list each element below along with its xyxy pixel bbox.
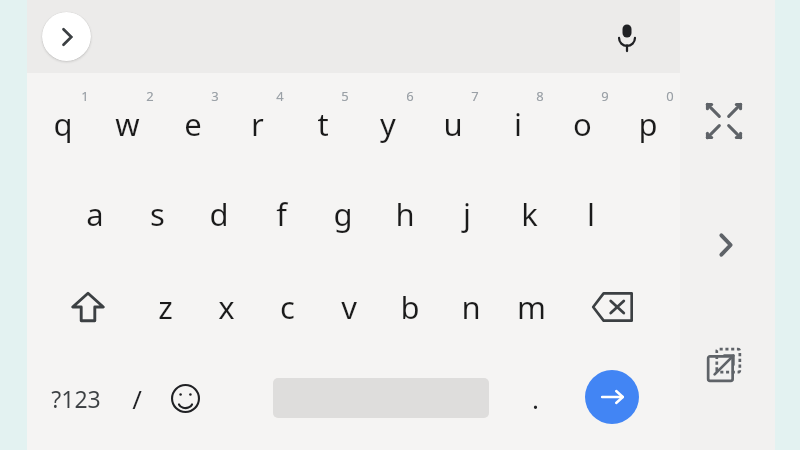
staticText: ?123 xyxy=(51,383,101,414)
button[interactable]: . xyxy=(509,360,561,436)
staticText: q xyxy=(53,103,73,145)
button[interactable]: Backspace xyxy=(579,266,645,348)
staticText: k xyxy=(521,193,538,235)
button[interactable]: l xyxy=(560,171,622,257)
staticText: 7 xyxy=(471,87,479,105)
staticText: r xyxy=(251,103,264,145)
staticText: h xyxy=(395,193,415,235)
button[interactable]: e xyxy=(160,81,225,167)
button[interactable]: q xyxy=(30,81,95,167)
button[interactable]: j xyxy=(436,171,498,257)
staticText: o xyxy=(573,103,592,145)
button[interactable]: p xyxy=(615,81,680,167)
button[interactable]: m xyxy=(501,264,562,350)
staticText: c xyxy=(280,286,295,328)
staticText: / xyxy=(132,381,142,416)
staticText: l xyxy=(587,193,595,235)
button[interactable]: s xyxy=(126,171,188,257)
button[interactable]: Enter xyxy=(585,370,639,424)
staticText: t xyxy=(317,103,329,145)
button[interactable]: a xyxy=(64,171,126,257)
button[interactable]: c xyxy=(257,264,318,350)
button[interactable]: b xyxy=(379,264,440,350)
button[interactable]: f xyxy=(250,171,312,257)
staticText: 3 xyxy=(211,87,219,105)
staticText: x xyxy=(218,286,235,328)
button[interactable]: x xyxy=(196,264,257,350)
button[interactable]: Shift xyxy=(55,266,121,348)
button[interactable]: / xyxy=(110,360,164,436)
staticText: 8 xyxy=(536,87,544,105)
button[interactable]: Floating keyboard xyxy=(696,337,752,393)
staticText: j xyxy=(463,193,471,235)
button[interactable]: w xyxy=(95,81,160,167)
staticText: 5 xyxy=(341,87,349,105)
staticText: v xyxy=(341,286,357,328)
staticText: y xyxy=(380,103,396,145)
button[interactable]: r xyxy=(225,81,290,167)
button[interactable]: h xyxy=(374,171,436,257)
staticText: m xyxy=(517,286,546,328)
staticText: 6 xyxy=(406,87,414,105)
button[interactable]: y xyxy=(355,81,420,167)
button[interactable]: Fullscreen xyxy=(696,93,752,149)
button[interactable]: k xyxy=(498,171,560,257)
button[interactable]: Next xyxy=(697,217,753,273)
staticText: 4 xyxy=(276,87,284,105)
button[interactable]: t xyxy=(290,81,355,167)
staticText: s xyxy=(150,193,165,235)
button[interactable]: ?123 xyxy=(42,360,110,436)
staticText: b xyxy=(400,286,420,328)
staticText: i xyxy=(514,103,522,145)
button[interactable]: u xyxy=(420,81,485,167)
staticText: n xyxy=(461,286,481,328)
button[interactable]: v xyxy=(318,264,379,350)
button[interactable]: Expand suggestions xyxy=(42,12,91,61)
staticText: 0 xyxy=(666,87,674,105)
staticText: u xyxy=(443,103,463,145)
staticText: p xyxy=(638,103,658,145)
button[interactable]: Voice input xyxy=(601,11,653,63)
staticText: f xyxy=(276,193,287,235)
staticText: g xyxy=(333,193,353,235)
button[interactable]: z xyxy=(135,264,196,350)
button[interactable]: o xyxy=(550,81,615,167)
staticText: . xyxy=(532,381,539,416)
staticText: d xyxy=(209,193,229,235)
staticText: z xyxy=(158,286,173,328)
button[interactable]: n xyxy=(440,264,501,350)
button[interactable]: g xyxy=(312,171,374,257)
staticText: a xyxy=(86,193,104,235)
staticText: 2 xyxy=(146,87,154,105)
button[interactable]: i xyxy=(485,81,550,167)
staticText: 9 xyxy=(601,87,609,105)
staticText: w xyxy=(115,103,140,145)
button[interactable]: Emoji xyxy=(159,360,211,436)
button[interactable]: d xyxy=(188,171,250,257)
staticText: e xyxy=(184,103,202,145)
staticText: 1 xyxy=(81,87,89,105)
